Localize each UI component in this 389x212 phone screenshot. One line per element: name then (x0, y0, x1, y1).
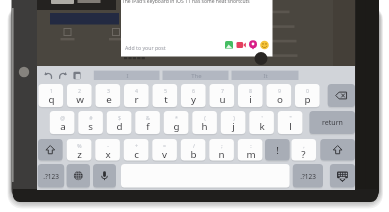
staticText: 9 (278, 87, 281, 94)
button[interactable]: 1 (39, 84, 64, 107)
button[interactable]: # (78, 111, 103, 134)
button[interactable]: return (309, 111, 355, 134)
staticText: Add to your post (125, 44, 166, 51)
staticText: return (322, 118, 343, 128)
staticText: u (219, 93, 226, 106)
button[interactable]: 6 (181, 84, 206, 107)
staticText: 4 (135, 87, 138, 94)
staticText: m (246, 148, 256, 161)
staticText: f (146, 120, 150, 133)
staticText: c (134, 148, 139, 161)
button[interactable]: The (163, 71, 229, 80)
button[interactable]: ! (265, 139, 290, 161)
staticText: @ (60, 114, 65, 121)
staticText: $ (118, 114, 121, 121)
staticText: / (193, 142, 195, 149)
staticText: The iPad's keyboard in iOS 11 has some n… (122, 0, 250, 5)
button[interactable]: 8 (238, 84, 263, 107)
button[interactable]: / (181, 139, 206, 161)
staticText: s (88, 120, 93, 133)
staticText: + (135, 142, 138, 149)
staticText: 7 (221, 87, 224, 94)
staticText: x (105, 148, 111, 161)
button[interactable]: - (95, 139, 120, 161)
staticText: " (289, 114, 292, 121)
button[interactable]: : (238, 139, 263, 161)
staticText: ) (233, 114, 235, 121)
button[interactable]: .?123 (38, 164, 64, 188)
button[interactable]: & (135, 111, 160, 134)
button[interactable]: % (67, 139, 92, 161)
staticText: q (48, 93, 55, 106)
staticText: 2 (78, 87, 81, 94)
button[interactable]: It (232, 71, 299, 80)
staticText: l (289, 120, 292, 133)
button[interactable]: 3 (96, 84, 121, 107)
staticText: & (146, 114, 150, 121)
button[interactable]: Dictate (93, 164, 116, 188)
button[interactable]: + (124, 139, 149, 161)
staticText: 5 (164, 87, 167, 94)
staticText: ? (301, 148, 306, 161)
staticText: The (191, 72, 202, 80)
staticText: ( (204, 114, 206, 121)
staticText: 1 (50, 87, 53, 94)
button[interactable]: 9 (267, 84, 292, 107)
button[interactable]: = (152, 139, 177, 161)
button[interactable]: 4 (124, 84, 149, 107)
staticText: 3 (107, 87, 110, 94)
button[interactable]: 7 (210, 84, 235, 107)
staticText: v (162, 148, 167, 161)
staticText: e (106, 93, 112, 106)
button[interactable]: Shift (320, 139, 355, 161)
staticText: b (190, 148, 197, 161)
button[interactable]: .?123 (293, 164, 323, 188)
button[interactable]: Backspace (328, 84, 355, 107)
staticText: p (304, 93, 311, 106)
staticText: k (259, 120, 265, 133)
button[interactable]: ) (221, 111, 246, 134)
button[interactable]: 5 (153, 84, 178, 107)
button[interactable]: 0 (295, 84, 320, 107)
staticText: i (249, 93, 252, 106)
button[interactable]: Change keyboard (67, 164, 90, 188)
staticText: = (163, 142, 166, 149)
staticText: ; (221, 142, 223, 149)
button[interactable]: ( (192, 111, 217, 134)
button[interactable]: * (164, 111, 189, 134)
button[interactable] (121, 164, 290, 188)
staticText: I (126, 72, 129, 80)
button[interactable]: " (278, 111, 303, 134)
staticText: r (134, 93, 139, 106)
staticText: # (89, 114, 93, 121)
button[interactable]: Shift (38, 139, 63, 161)
staticText: z (77, 148, 82, 161)
button[interactable]: , (291, 139, 316, 161)
staticText: ! (276, 144, 279, 157)
staticText: : (250, 142, 252, 149)
staticText: It (263, 72, 268, 80)
staticText: - (107, 142, 109, 149)
button[interactable]: @ (50, 111, 75, 134)
staticText: 6 (192, 87, 195, 94)
staticText: t (164, 93, 168, 106)
button[interactable]: 2 (67, 84, 92, 107)
staticText: a (60, 120, 66, 133)
button[interactable]: ' (249, 111, 274, 134)
button[interactable]: Add to your post (125, 44, 169, 52)
staticText: .?123 (300, 172, 316, 181)
staticText: n (218, 148, 225, 161)
button[interactable]: $ (107, 111, 132, 134)
staticText: d (116, 120, 123, 133)
staticText: ' (261, 114, 263, 121)
staticText: o (277, 93, 283, 106)
button[interactable]: Hide keyboard (330, 164, 355, 188)
button[interactable]: ; (209, 139, 234, 161)
staticText: w (76, 93, 84, 106)
staticText: * (175, 114, 178, 121)
staticText: y (191, 93, 196, 106)
staticText: % (77, 142, 82, 149)
staticText: h (201, 120, 208, 133)
staticText: , (303, 142, 305, 149)
